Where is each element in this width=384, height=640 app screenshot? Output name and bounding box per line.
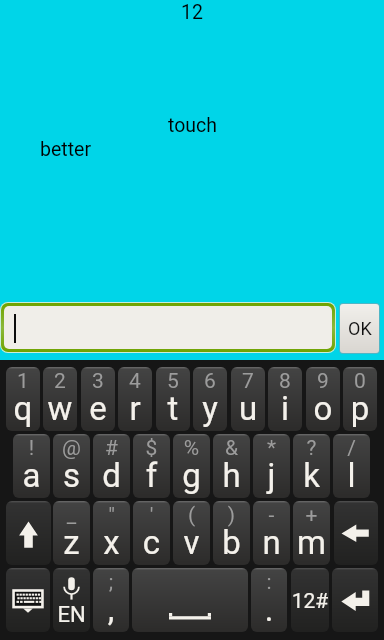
button[interactable]: & xyxy=(213,434,250,498)
button[interactable]: Space xyxy=(132,568,248,632)
staticText: OK xyxy=(348,318,372,339)
button[interactable]: ! xyxy=(13,434,50,498)
staticText: touch xyxy=(168,114,218,137)
staticText: * xyxy=(253,436,290,461)
staticText: q xyxy=(6,389,40,428)
staticText: c xyxy=(133,523,170,562)
staticText: : xyxy=(251,570,287,595)
staticText: f xyxy=(133,456,170,495)
button[interactable]: ? xyxy=(293,434,330,498)
staticText: % xyxy=(173,436,210,461)
staticText: d xyxy=(93,456,130,495)
staticText: l xyxy=(333,456,370,495)
button[interactable]: ) xyxy=(213,501,250,565)
button[interactable]: 1 xyxy=(6,367,40,431)
button[interactable]: 12# xyxy=(291,568,329,632)
button[interactable]: 2 xyxy=(43,367,77,431)
staticText: 3 xyxy=(81,369,115,394)
staticText: better xyxy=(40,138,91,161)
button[interactable]: ; xyxy=(93,568,129,632)
staticText: u xyxy=(231,389,265,428)
staticText: 7 xyxy=(231,369,265,394)
staticText: k xyxy=(293,456,330,495)
staticText: x xyxy=(93,523,130,562)
button[interactable]: 7 xyxy=(231,367,265,431)
staticText: v xyxy=(173,523,210,562)
button[interactable]: EN xyxy=(53,568,90,632)
staticText: ! xyxy=(13,436,50,461)
staticText: 1 xyxy=(6,369,40,394)
staticText: & xyxy=(213,436,250,461)
staticText: , xyxy=(93,590,129,629)
staticText: 5 xyxy=(156,369,190,394)
staticText: 12# xyxy=(291,589,329,614)
staticText: $ xyxy=(133,436,170,461)
staticText: 0 xyxy=(343,369,377,394)
staticText: e xyxy=(81,389,115,428)
staticText: p xyxy=(343,389,377,428)
staticText: 9 xyxy=(306,369,340,394)
button[interactable]: 4 xyxy=(118,367,152,431)
staticText: i xyxy=(268,389,302,428)
staticText: b xyxy=(213,523,250,562)
staticText: + xyxy=(293,503,330,528)
button[interactable]: $ xyxy=(133,434,170,498)
button[interactable]: - xyxy=(253,501,290,565)
button[interactable]: : xyxy=(251,568,287,632)
staticText: t xyxy=(156,389,190,428)
staticText: o xyxy=(306,389,340,428)
staticText: ' xyxy=(133,503,170,528)
staticText: ( xyxy=(173,503,210,528)
staticText: 8 xyxy=(268,369,302,394)
button[interactable]: _ xyxy=(53,501,90,565)
staticText: ; xyxy=(93,570,129,595)
staticText: w xyxy=(43,389,77,428)
staticText: j xyxy=(253,456,290,495)
button[interactable]: 0 xyxy=(343,367,377,431)
staticText: # xyxy=(93,436,130,461)
staticText: y xyxy=(193,389,227,428)
staticText: 12 xyxy=(181,1,203,24)
staticText: / xyxy=(333,436,370,461)
staticText: 6 xyxy=(193,369,227,394)
button[interactable]: " xyxy=(93,501,130,565)
button[interactable] xyxy=(4,306,332,349)
button[interactable]: 8 xyxy=(268,367,302,431)
staticText: " xyxy=(93,503,130,528)
button[interactable]: Enter xyxy=(332,568,378,632)
button[interactable]: Shift xyxy=(6,501,51,565)
staticText: . xyxy=(251,590,287,629)
button[interactable]: 9 xyxy=(306,367,340,431)
staticText: n xyxy=(253,523,290,562)
staticText: - xyxy=(253,503,290,528)
staticText: 2 xyxy=(43,369,77,394)
staticText: r xyxy=(118,389,152,428)
button[interactable]: OK xyxy=(340,304,379,353)
staticText: ) xyxy=(213,503,250,528)
staticText: _ xyxy=(53,503,90,528)
staticText: ? xyxy=(293,436,330,461)
staticText: EN xyxy=(53,602,90,628)
button[interactable]: # xyxy=(93,434,130,498)
button[interactable]: 6 xyxy=(193,367,227,431)
button[interactable]: 3 xyxy=(81,367,115,431)
staticText: @ xyxy=(53,436,90,461)
button[interactable]: + xyxy=(293,501,330,565)
staticText: s xyxy=(53,456,90,495)
button[interactable]: @ xyxy=(53,434,90,498)
button[interactable]: 5 xyxy=(156,367,190,431)
button[interactable]: % xyxy=(173,434,210,498)
staticText: 4 xyxy=(118,369,152,394)
button[interactable]: Backspace xyxy=(334,501,378,565)
button[interactable]: ( xyxy=(173,501,210,565)
button[interactable]: / xyxy=(333,434,370,498)
button[interactable]: Hide keyboard xyxy=(6,568,50,632)
staticText: z xyxy=(53,523,90,562)
staticText: h xyxy=(213,456,250,495)
button[interactable]: * xyxy=(253,434,290,498)
button[interactable]: ' xyxy=(133,501,170,565)
staticText: a xyxy=(13,456,50,495)
staticText: g xyxy=(173,456,210,495)
staticText: m xyxy=(293,523,330,562)
